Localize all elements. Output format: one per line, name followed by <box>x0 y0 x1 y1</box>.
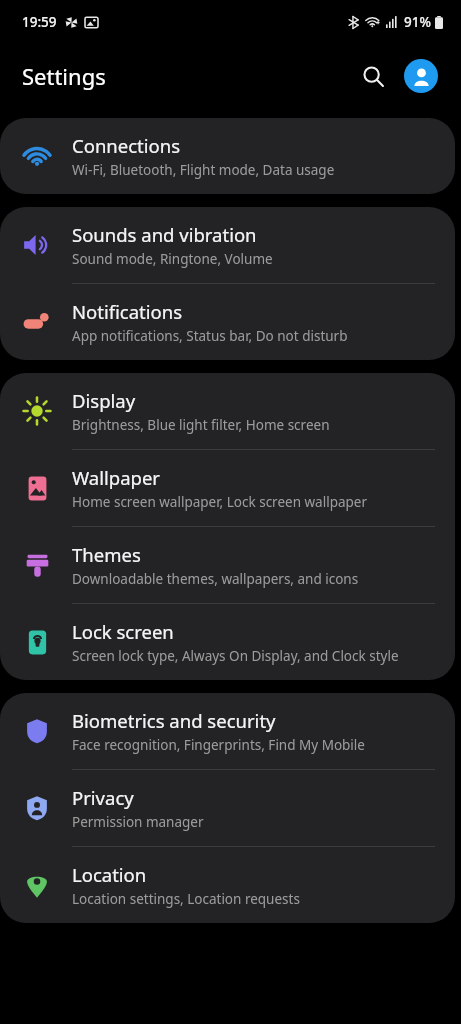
staticText: Wallpaper <box>72 465 160 490</box>
staticText: Themes <box>72 542 141 567</box>
staticText: Connections <box>72 133 181 158</box>
staticText: Lock screen <box>72 619 174 644</box>
button[interactable]: Themes <box>0 527 455 603</box>
staticText: Notifications <box>72 299 183 324</box>
button[interactable]: Connections <box>0 118 455 194</box>
staticText: Home screen wallpaper, Lock screen wallp… <box>72 493 368 511</box>
staticText: Brightness, Blue light filter, Home scre… <box>72 416 330 434</box>
staticText: Biometrics and security <box>72 708 276 733</box>
staticText: Location <box>72 862 147 887</box>
button[interactable]: Notifications <box>0 284 455 360</box>
staticText: Screen lock type, Always On Display, and… <box>72 647 399 665</box>
staticText: Settings <box>22 61 106 91</box>
staticText: 19:59 <box>22 13 57 31</box>
button[interactable]: Wallpaper <box>0 450 455 526</box>
button[interactable]: Biometrics and security <box>0 693 455 769</box>
button[interactable]: Sounds and vibration <box>0 207 455 283</box>
button[interactable]: Location <box>0 847 455 923</box>
button[interactable]: Lock screen <box>0 604 455 680</box>
staticText: Sound mode, Ringtone, Volume <box>72 250 273 268</box>
staticText: App notifications, Status bar, Do not di… <box>72 327 348 345</box>
staticText: Location settings, Location requests <box>72 890 300 908</box>
staticText: Sounds and vibration <box>72 222 257 247</box>
button[interactable]: Search <box>351 54 395 98</box>
staticText: Wi-Fi, Bluetooth, Flight mode, Data usag… <box>72 161 335 179</box>
staticText: 91% <box>404 13 431 31</box>
button[interactable]: Privacy <box>0 770 455 846</box>
staticText: Permission manager <box>72 813 204 831</box>
staticText: Downloadable themes, wallpapers, and ico… <box>72 570 359 588</box>
button[interactable]: Display <box>0 373 455 449</box>
staticText: Face recognition, Fingerprints, Find My … <box>72 736 365 754</box>
staticText: Display <box>72 388 136 413</box>
button[interactable]: Account <box>399 54 443 98</box>
staticText: Privacy <box>72 785 134 810</box>
